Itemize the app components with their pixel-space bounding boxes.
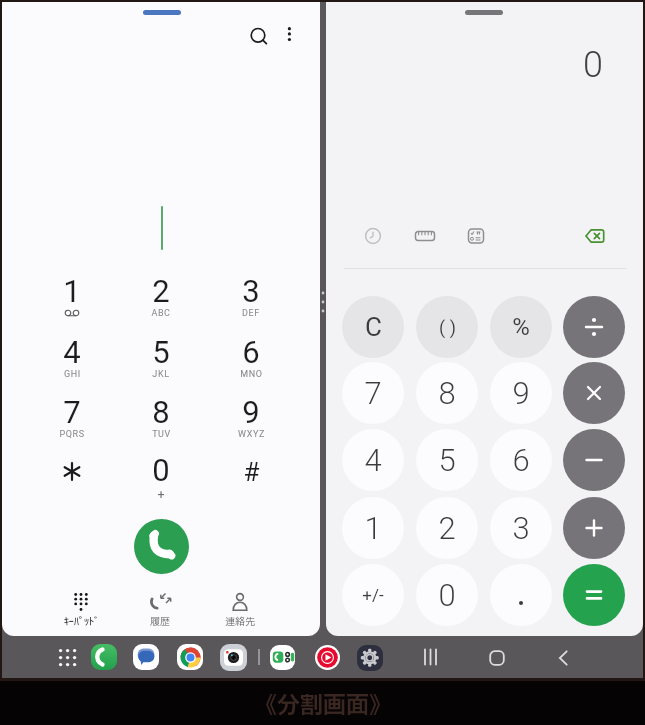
staticText: ｷｰﾊﾟｯﾄﾞ xyxy=(64,614,99,628)
staticText: 《分割画面》 xyxy=(254,689,392,723)
staticText: + xyxy=(157,487,165,501)
staticText: GHI xyxy=(64,369,81,380)
staticText: 8 xyxy=(438,375,456,411)
button[interactable]: 履歴 xyxy=(130,590,190,632)
button[interactable] xyxy=(479,640,514,675)
button[interactable]: ( ) xyxy=(416,296,478,358)
button[interactable]: 9 xyxy=(490,362,552,424)
button[interactable]: 8 xyxy=(131,390,191,442)
staticText: 6 xyxy=(512,442,530,478)
staticText: 5 xyxy=(152,334,170,370)
button[interactable] xyxy=(546,640,581,675)
button[interactable] xyxy=(406,217,444,255)
button[interactable] xyxy=(133,644,159,670)
staticText: JKL xyxy=(152,369,170,380)
staticText: # xyxy=(243,457,260,487)
staticText: C xyxy=(365,312,382,342)
button[interactable]: 0 xyxy=(131,448,191,500)
staticText: 4 xyxy=(63,334,81,370)
button[interactable]: 1 xyxy=(42,269,102,321)
button[interactable] xyxy=(576,217,614,255)
button[interactable] xyxy=(177,644,203,670)
button[interactable] xyxy=(354,217,392,255)
staticText: PQRS xyxy=(59,429,85,440)
button[interactable]: % xyxy=(490,296,552,358)
button[interactable]: 4 xyxy=(342,429,404,491)
staticText: DEF xyxy=(242,308,260,319)
button[interactable]: 9 xyxy=(221,390,281,442)
button[interactable] xyxy=(315,645,340,670)
button[interactable] xyxy=(134,519,189,574)
staticText: 9 xyxy=(512,375,530,411)
button[interactable]: 4 xyxy=(42,330,102,382)
button[interactable]: 2 xyxy=(131,269,191,321)
staticText: 連絡先 xyxy=(225,614,255,628)
staticText: +/- xyxy=(362,585,384,605)
staticText: 3 xyxy=(242,273,260,309)
staticText: 0 xyxy=(152,452,170,488)
button[interactable] xyxy=(357,645,383,671)
staticText: TUV xyxy=(152,429,171,440)
staticText: 0 xyxy=(583,44,603,86)
staticText: 履歴 xyxy=(150,614,170,628)
button[interactable]: 5 xyxy=(131,330,191,382)
button[interactable] xyxy=(270,645,295,670)
button[interactable]: # xyxy=(221,447,281,495)
staticText: 1 xyxy=(364,510,382,546)
button[interactable] xyxy=(563,362,625,424)
button[interactable] xyxy=(413,640,448,675)
button[interactable] xyxy=(563,429,625,491)
button[interactable]: 8 xyxy=(416,362,478,424)
staticText: 8 xyxy=(152,394,170,430)
button[interactable] xyxy=(91,644,117,670)
button[interactable]: 2 xyxy=(416,497,478,559)
staticText: MNO xyxy=(240,369,263,380)
staticText: WXYZ xyxy=(238,429,265,440)
staticText: % xyxy=(512,313,530,341)
staticText: ABC xyxy=(151,308,171,319)
button[interactable] xyxy=(279,22,300,50)
staticText: ( ) xyxy=(439,317,456,338)
button[interactable]: +/- xyxy=(342,564,404,626)
staticText: 7 xyxy=(63,394,81,430)
button[interactable]: ｷｰﾊﾟｯﾄﾞ xyxy=(51,590,111,632)
button[interactable] xyxy=(457,217,495,255)
staticText: 7 xyxy=(364,375,382,411)
button[interactable]: 3 xyxy=(221,269,281,321)
button[interactable] xyxy=(53,643,82,672)
button[interactable] xyxy=(563,296,625,358)
staticText: 2 xyxy=(152,273,170,309)
button[interactable]: C xyxy=(342,296,404,358)
button[interactable] xyxy=(243,20,273,50)
button[interactable]: 0 xyxy=(416,564,478,626)
button[interactable] xyxy=(490,564,552,626)
staticText: 0 xyxy=(438,577,456,613)
staticText: 9 xyxy=(242,394,260,430)
button[interactable] xyxy=(42,447,102,495)
button[interactable]: 1 xyxy=(342,497,404,559)
button[interactable]: 5 xyxy=(416,429,478,491)
button[interactable]: 6 xyxy=(490,429,552,491)
staticText: 3 xyxy=(512,510,530,546)
staticText: 4 xyxy=(364,442,382,478)
button[interactable]: 6 xyxy=(221,330,281,382)
button[interactable] xyxy=(563,564,625,626)
button[interactable]: 7 xyxy=(342,362,404,424)
button[interactable]: 7 xyxy=(42,390,102,442)
button[interactable] xyxy=(563,497,625,559)
staticText: 5 xyxy=(438,442,456,478)
button[interactable]: 連絡先 xyxy=(210,590,270,632)
staticText: 2 xyxy=(438,510,456,546)
button[interactable] xyxy=(220,644,247,671)
staticText: 1 xyxy=(63,273,81,309)
staticText: 6 xyxy=(242,334,260,370)
button[interactable]: 3 xyxy=(490,497,552,559)
